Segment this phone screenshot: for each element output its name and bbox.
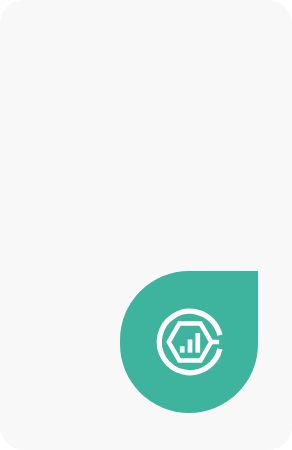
- button[interactable]: App logo: [120, 271, 258, 413]
